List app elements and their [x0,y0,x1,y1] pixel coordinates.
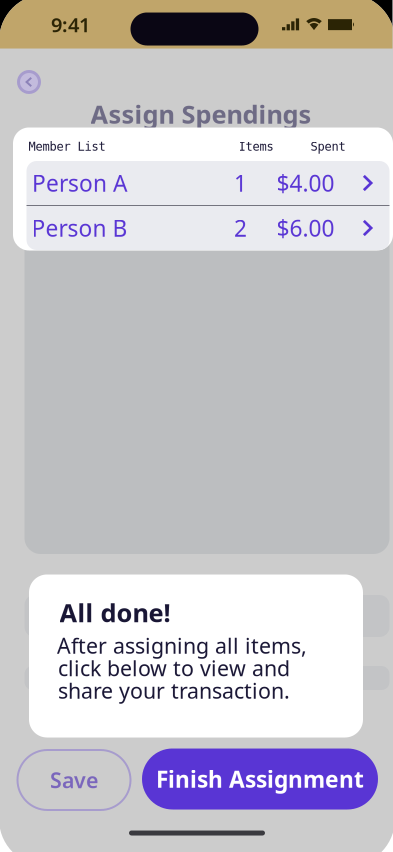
button[interactable]: Finish Assignment [142,748,378,809]
staticText: Person B [31,213,127,243]
staticText: Spent [310,140,345,153]
staticText: click below to view and [58,654,290,682]
staticText: 9:41 [51,11,90,38]
button[interactable]: Save [17,750,130,810]
staticText: $4.00 [276,168,334,198]
staticText: After assigning all items, [57,631,307,660]
button[interactable]: Person A [26,161,389,205]
staticText: share your transaction. [58,676,290,705]
staticText: Save [50,766,98,794]
staticText: Member List [28,140,105,153]
button[interactable]: Back [12,65,46,99]
staticText: 2 [234,213,247,243]
staticText: 1 [234,168,247,198]
staticText: $6.00 [276,213,334,243]
staticText: Assign Spendings [90,97,311,131]
staticText: All done! [59,596,170,629]
button[interactable]: Person B [26,206,389,250]
staticText: Finish Assignment [156,764,364,794]
staticText: Person A [32,168,127,198]
staticText: Items [238,140,273,153]
